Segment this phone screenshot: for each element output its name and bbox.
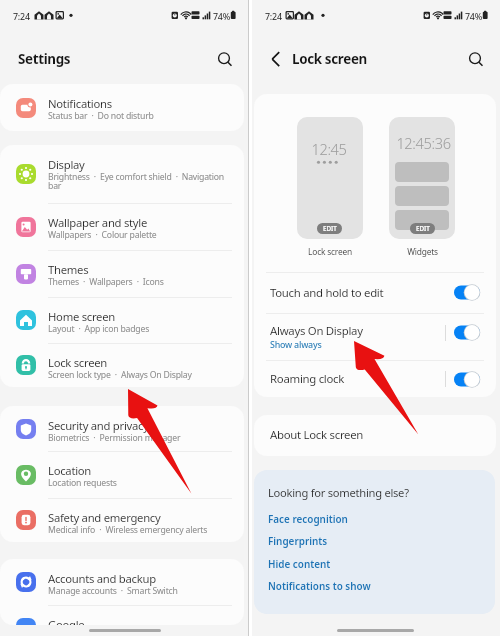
staticText: Wallpapers · Colour palette (48, 229, 157, 241)
staticText: About Lock screen (270, 427, 364, 443)
button[interactable] (389, 117, 455, 239)
staticText: Fingerprints (268, 534, 328, 547)
staticText: EDIT (416, 224, 430, 233)
button[interactable]: Notifications to show (268, 576, 388, 594)
button[interactable]: Hide content (268, 554, 388, 572)
button[interactable]: Search (462, 45, 490, 73)
staticText: Security and privacy (48, 418, 149, 433)
staticText: 12:45:36 (396, 133, 451, 153)
button[interactable]: Toggle (453, 284, 481, 301)
staticText: Show always (270, 338, 322, 350)
staticText: Always On Display (270, 323, 363, 339)
button[interactable]: Face recognition (268, 509, 388, 527)
staticText: 12:45 (311, 139, 347, 159)
button[interactable]: Accounts and backup (0, 559, 244, 605)
staticText: Looking for something else? (268, 485, 409, 500)
staticText: Face recognition (268, 512, 348, 525)
staticText: Widgets (407, 246, 438, 257)
button[interactable] (297, 117, 363, 239)
button[interactable]: Toggle (453, 324, 481, 341)
staticText: Hide content (268, 557, 331, 570)
staticText: Location (48, 463, 92, 478)
button[interactable] (254, 415, 496, 456)
staticText: Manage accounts · Smart Switch (48, 585, 178, 597)
staticText: Lock screen (48, 355, 108, 370)
staticText: Settings (18, 50, 71, 68)
button[interactable]: Lock screen (0, 343, 244, 387)
staticText: Medical info · Wireless emergency alerts (48, 524, 208, 536)
staticText: Notifications to show (268, 579, 371, 592)
button[interactable]: EDIT (317, 223, 342, 234)
staticText: Roaming clock (270, 371, 345, 387)
button[interactable]: Fingerprints (268, 531, 388, 549)
staticText: EDIT (323, 224, 337, 233)
button[interactable]: Themes (0, 250, 244, 297)
button[interactable] (254, 360, 496, 397)
staticText: Safety and emergency (48, 510, 161, 525)
staticText: Home screen (48, 309, 115, 324)
button[interactable] (254, 313, 496, 360)
staticText: Screen lock type · Always On Display (48, 369, 192, 381)
staticText: Themes · Wallpapers · Icons (48, 276, 164, 288)
staticText: Accounts and backup (48, 571, 156, 586)
button[interactable]: Security and privacy (0, 406, 244, 451)
staticText: Notifications (48, 96, 112, 111)
button[interactable]: Display (0, 145, 244, 203)
staticText: Display (48, 157, 85, 172)
staticText: Location requests (48, 477, 117, 489)
staticText: Lock screen (308, 246, 352, 257)
button[interactable]: Home screen (0, 297, 244, 343)
button[interactable]: EDIT (410, 223, 435, 234)
staticText: 74% (213, 10, 231, 22)
button[interactable] (254, 272, 496, 312)
staticText: bar (48, 180, 62, 192)
staticText: Status bar · Do not disturb (48, 110, 154, 122)
button[interactable]: Search (211, 45, 239, 73)
button[interactable]: Google (0, 605, 244, 636)
staticText: Wallpaper and style (48, 215, 148, 230)
button[interactable]: Toggle (453, 371, 481, 388)
staticText: Google (48, 617, 85, 632)
staticText: Brightness · Eye comfort shield · Naviga… (48, 171, 225, 183)
staticText: Layout · App icon badges (48, 323, 150, 335)
staticText: Biometrics · Permission manager (48, 432, 181, 444)
button[interactable]: Back (262, 45, 290, 73)
staticText: 74% (465, 10, 483, 22)
button[interactable]: Location (0, 451, 244, 498)
staticText: 7:24 (265, 10, 282, 22)
staticText: Touch and hold to edit (270, 285, 384, 301)
staticText: Themes (48, 262, 89, 277)
staticText: Lock screen (292, 50, 367, 68)
button[interactable]: Notifications (0, 84, 244, 131)
button[interactable]: Safety and emergency (0, 498, 244, 542)
button[interactable]: Wallpaper and style (0, 203, 244, 250)
staticText: 7:24 (13, 10, 30, 22)
